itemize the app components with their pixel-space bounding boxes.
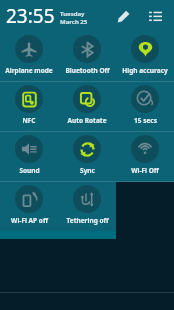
button[interactable]: Settings list [142,3,168,29]
staticText: Airplane mode [5,66,53,75]
button[interactable]: Wi-Fi AP off [0,182,58,231]
button[interactable]: 15 secs [116,82,174,131]
button[interactable]: Tethering off [58,182,116,231]
staticText: Sync [80,166,95,175]
button[interactable]: Bluetooth Off [58,32,116,81]
button[interactable]: Edit [110,3,136,29]
button[interactable]: Airplane mode [0,32,58,81]
staticText: Tethering off [66,216,109,225]
button[interactable]: Sync [58,132,116,181]
staticText: Wi-Fi AP off [11,216,48,225]
staticText: Tuesday [60,10,85,18]
button[interactable]: Auto Rotate [58,82,116,131]
button[interactable]: High accuracy [116,32,174,81]
staticText: NFC [22,116,36,125]
staticText: Auto Rotate [67,116,107,125]
staticText: 15 secs [134,116,157,125]
button[interactable]: Wi-Fi Off [116,132,174,181]
staticText: March 25 [60,18,88,26]
staticText: 23:55 [6,3,55,29]
button[interactable]: Sound [0,132,58,181]
staticText: High accuracy [122,66,168,75]
staticText: Bluetooth Off [65,66,110,75]
staticText: Sound [19,166,40,175]
button[interactable]: NFC [0,82,58,131]
staticText: Wi-Fi Off [131,166,159,175]
